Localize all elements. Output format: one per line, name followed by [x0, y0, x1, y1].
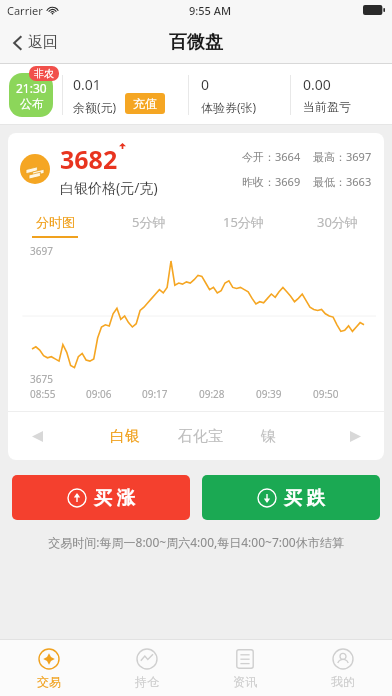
- button[interactable]: 0.01: [63, 64, 188, 125]
- staticText: 体验券(张): [201, 99, 257, 115]
- button[interactable]: 资讯: [196, 640, 294, 696]
- staticText: 返回: [28, 33, 58, 52]
- staticText: 09:06: [86, 387, 112, 401]
- staticText: 充值: [133, 96, 157, 111]
- staticText: 镍: [261, 427, 276, 446]
- button[interactable]: 分时图: [8, 205, 102, 239]
- staticText: 最低：3663: [313, 174, 372, 189]
- button[interactable]: 0: [189, 64, 290, 125]
- staticText: 持仓: [135, 674, 159, 689]
- staticText: 0.01: [73, 75, 101, 94]
- staticText: 余额(元): [73, 99, 117, 115]
- button[interactable]: 5分钟: [102, 205, 196, 239]
- button[interactable]: 镍: [245, 421, 292, 452]
- button[interactable]: 买 跌: [202, 475, 380, 520]
- staticText: 08:55: [30, 387, 56, 401]
- staticText: 0.00: [303, 75, 331, 94]
- staticText: 交易时间:每周一8:00~周六4:00,每日4:00~7:00休市结算: [48, 534, 344, 550]
- staticText: 21:30: [16, 80, 47, 96]
- button[interactable]: Previous instrument: [24, 423, 50, 449]
- staticText: 3682: [60, 142, 118, 176]
- button[interactable]: 21:30: [0, 64, 62, 125]
- staticText: 09:39: [256, 387, 282, 401]
- button[interactable]: 石化宝: [162, 421, 239, 452]
- staticText: 非农: [34, 67, 54, 80]
- staticText: 昨收：3669: [242, 174, 301, 189]
- staticText: Carrier: [7, 3, 43, 18]
- button[interactable]: 充值: [125, 93, 165, 114]
- button[interactable]: 15分钟: [196, 205, 290, 239]
- button[interactable]: 返回: [8, 27, 62, 58]
- staticText: 公布: [20, 96, 44, 111]
- staticText: 30分钟: [317, 213, 358, 231]
- button[interactable]: Next instrument: [342, 423, 368, 449]
- staticText: 白银价格(元/克): [60, 178, 158, 197]
- button[interactable]: 白银: [94, 421, 156, 452]
- staticText: 9:55 AM: [189, 3, 232, 18]
- staticText: 09:50: [313, 387, 339, 401]
- staticText: 今开：3664: [242, 149, 301, 164]
- button[interactable]: 0.00: [291, 64, 392, 125]
- staticText: 买 涨: [94, 485, 135, 510]
- button[interactable]: 我的: [294, 640, 392, 696]
- staticText: 3697: [30, 244, 53, 258]
- button[interactable]: 交易: [0, 640, 98, 696]
- staticText: 石化宝: [178, 427, 223, 446]
- staticText: 买 跌: [284, 485, 325, 510]
- staticText: 资讯: [233, 674, 257, 689]
- staticText: 白银: [110, 427, 140, 446]
- button[interactable]: 3682: [8, 133, 384, 205]
- staticText: 0: [201, 75, 210, 94]
- staticText: 09:28: [199, 387, 225, 401]
- staticText: 我的: [331, 674, 355, 689]
- staticText: 5分钟: [132, 213, 166, 231]
- staticText: 百微盘: [169, 31, 223, 54]
- staticText: 交易: [37, 674, 61, 689]
- staticText: 最高：3697: [313, 149, 372, 164]
- button[interactable]: 30分钟: [290, 205, 384, 239]
- staticText: 分时图: [36, 214, 75, 230]
- staticText: 09:17: [142, 387, 168, 401]
- button[interactable]: 买 涨: [12, 475, 190, 520]
- button[interactable]: 持仓: [98, 640, 196, 696]
- staticText: 当前盈亏: [303, 99, 351, 114]
- staticText: 3675: [30, 372, 53, 386]
- staticText: 15分钟: [223, 213, 264, 231]
